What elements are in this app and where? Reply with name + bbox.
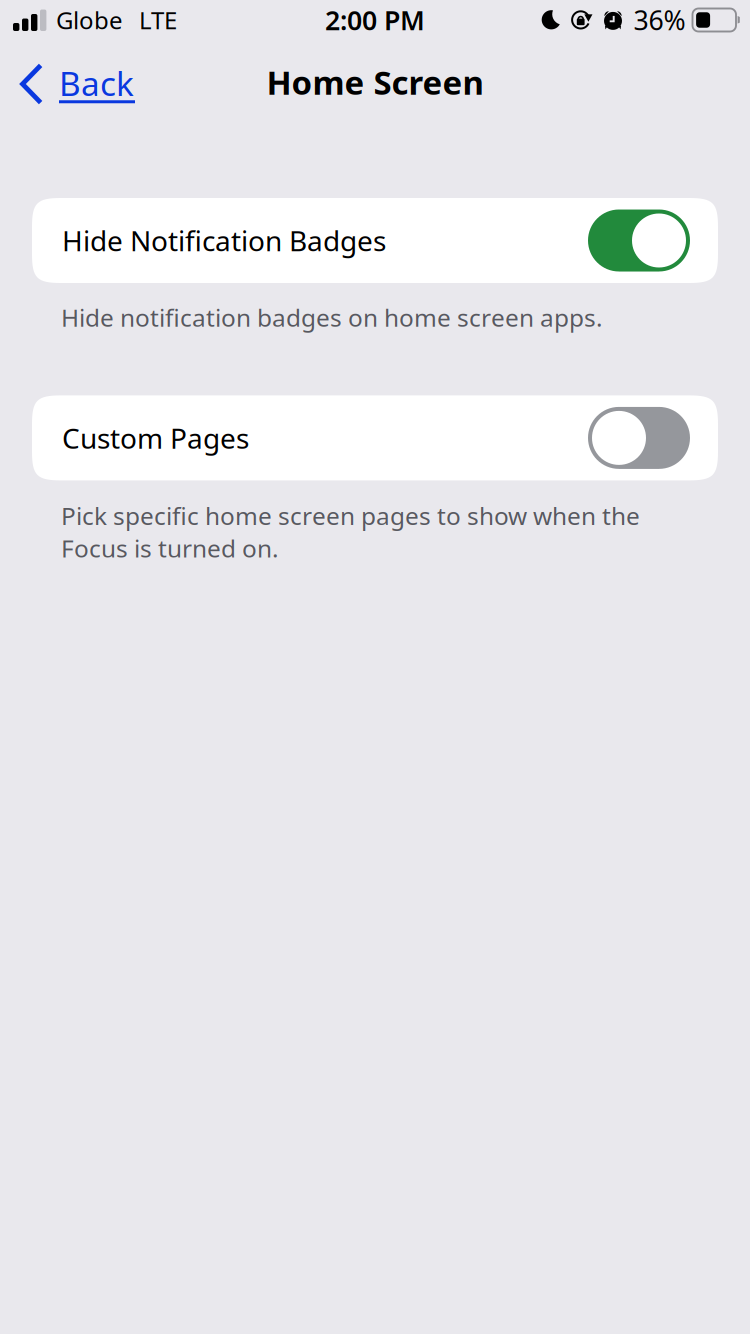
staticText: 2:00 PM	[325, 2, 425, 38]
button[interactable]: Back	[0, 40, 151, 115]
staticText: Pick specific home screen pages to show …	[61, 499, 640, 564]
staticText: Hide Notification Badges	[62, 222, 386, 259]
staticText: Custom Pages	[62, 419, 249, 456]
staticText: Back	[59, 61, 134, 105]
staticText: 36%	[633, 2, 685, 38]
staticText: Globe	[56, 4, 123, 36]
staticText: Home Screen	[266, 60, 483, 104]
staticText: LTE	[139, 4, 177, 36]
button[interactable]: Custom Pages	[32, 395, 718, 480]
staticText: Hide notification badges on home screen …	[61, 301, 603, 333]
button[interactable]: Hide Notification Badges	[32, 198, 718, 283]
